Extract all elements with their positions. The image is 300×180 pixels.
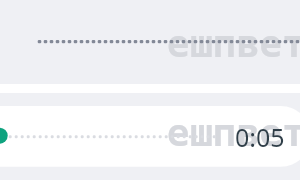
button[interactable]: ешпвет	[0, 10, 300, 73]
button[interactable]: ешпвет	[0, 106, 300, 167]
staticText: ешпвет	[167, 106, 300, 157]
staticText: ешпвет	[167, 17, 300, 68]
button[interactable]: Pause voice message	[0, 128, 8, 144]
staticText: 0:05	[235, 120, 285, 154]
